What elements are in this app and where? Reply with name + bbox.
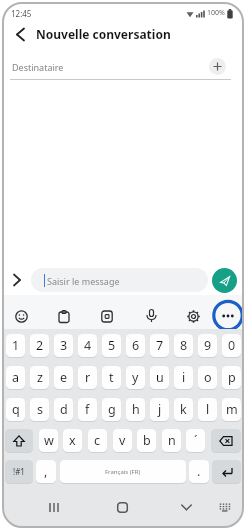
staticText: 2 [36, 337, 44, 354]
button[interactable] [10, 273, 24, 287]
staticText: Destinataire [12, 61, 64, 73]
button[interactable] [211, 429, 241, 452]
staticText: l [206, 401, 210, 418]
button[interactable]: 2 [30, 334, 49, 357]
staticText: b [143, 432, 151, 449]
button[interactable]: k [174, 398, 193, 421]
button[interactable] [209, 58, 226, 75]
button[interactable]: r [78, 366, 97, 389]
staticText: g [108, 401, 116, 418]
button[interactable]: j [150, 398, 169, 421]
button[interactable]: w [39, 429, 58, 452]
button[interactable]: y [126, 366, 145, 389]
staticText: o [204, 369, 212, 386]
button[interactable]: u [150, 366, 169, 389]
staticText: 8 [180, 337, 188, 354]
staticText: w [44, 432, 54, 449]
button[interactable] [212, 460, 241, 483]
button[interactable]: t [102, 366, 121, 389]
staticText: u [156, 369, 164, 386]
button[interactable]: z [30, 366, 49, 389]
staticText: 3 [60, 337, 68, 354]
staticText: 9 [204, 337, 212, 354]
button[interactable] [96, 305, 118, 327]
staticText: Nouvelle conversation [36, 26, 171, 42]
button[interactable] [10, 305, 32, 327]
staticText: . [197, 463, 201, 480]
staticText: 100% [207, 8, 225, 18]
button[interactable] [5, 429, 33, 452]
staticText: q [12, 401, 20, 418]
staticText: v [119, 432, 126, 449]
button[interactable]: p [222, 366, 241, 389]
button[interactable]: i [174, 366, 193, 389]
staticText: z [37, 369, 43, 386]
button[interactable]: 6 [126, 334, 145, 357]
button[interactable]: 8 [174, 334, 193, 357]
staticText: j [158, 401, 162, 418]
button[interactable]: 1 [6, 334, 25, 357]
button[interactable]: b [137, 429, 156, 452]
button[interactable]: 7 [150, 334, 169, 357]
button[interactable]: l [198, 398, 217, 421]
button[interactable] [10, 24, 30, 44]
staticText: , [44, 463, 48, 480]
button[interactable]: q [6, 398, 25, 421]
staticText: 4 [84, 337, 92, 354]
staticText: Français (FR) [105, 468, 141, 476]
button[interactable] [212, 268, 237, 293]
staticText: 5 [108, 337, 116, 354]
button[interactable] [110, 499, 134, 515]
staticText: 7 [156, 337, 164, 354]
staticText: d [60, 401, 68, 418]
staticText: 6 [132, 337, 140, 354]
button[interactable]: n [162, 429, 181, 452]
button[interactable] [214, 499, 236, 515]
button[interactable]: a [6, 366, 25, 389]
button[interactable] [140, 305, 162, 327]
staticText: !#1 [13, 466, 25, 477]
button[interactable]: 0 [222, 334, 241, 357]
button[interactable]: d [54, 398, 73, 421]
staticText: m [226, 401, 238, 418]
button[interactable] [217, 305, 239, 327]
button[interactable]: , [36, 460, 56, 483]
staticText: x [69, 432, 76, 449]
button[interactable]: 9 [198, 334, 217, 357]
staticText: r [85, 369, 91, 386]
button[interactable]: 3 [54, 334, 73, 357]
staticText: k [180, 401, 187, 418]
button[interactable]: m [222, 398, 241, 421]
button[interactable] [53, 305, 75, 327]
button[interactable]: . [189, 460, 209, 483]
button[interactable]: c [88, 429, 107, 452]
button[interactable]: !#1 [5, 460, 33, 483]
staticText: t [109, 369, 114, 386]
button[interactable]: v [113, 429, 132, 452]
button[interactable]: o [198, 366, 217, 389]
button[interactable] [174, 499, 198, 515]
staticText: h [132, 401, 140, 418]
button[interactable]: Saisir le message [31, 268, 208, 292]
button[interactable]: ´ [186, 429, 205, 452]
button[interactable]: Français (FR) [60, 460, 186, 483]
button[interactable]: e [54, 366, 73, 389]
button[interactable]: Destinataire [3, 58, 243, 80]
button[interactable]: 5 [102, 334, 121, 357]
button[interactable]: f [78, 398, 97, 421]
staticText: 1 [12, 337, 20, 354]
button[interactable]: 4 [78, 334, 97, 357]
button[interactable]: g [102, 398, 121, 421]
staticText: s [37, 401, 43, 418]
button[interactable] [42, 499, 66, 515]
staticText: c [94, 432, 101, 449]
button[interactable]: s [30, 398, 49, 421]
staticText: f [85, 401, 90, 418]
staticText: y [132, 369, 139, 386]
button[interactable]: x [63, 429, 82, 452]
button[interactable] [182, 305, 204, 327]
button[interactable]: h [126, 398, 145, 421]
staticText: p [228, 369, 236, 386]
staticText: a [12, 369, 20, 386]
staticText: Saisir le message [47, 275, 120, 287]
